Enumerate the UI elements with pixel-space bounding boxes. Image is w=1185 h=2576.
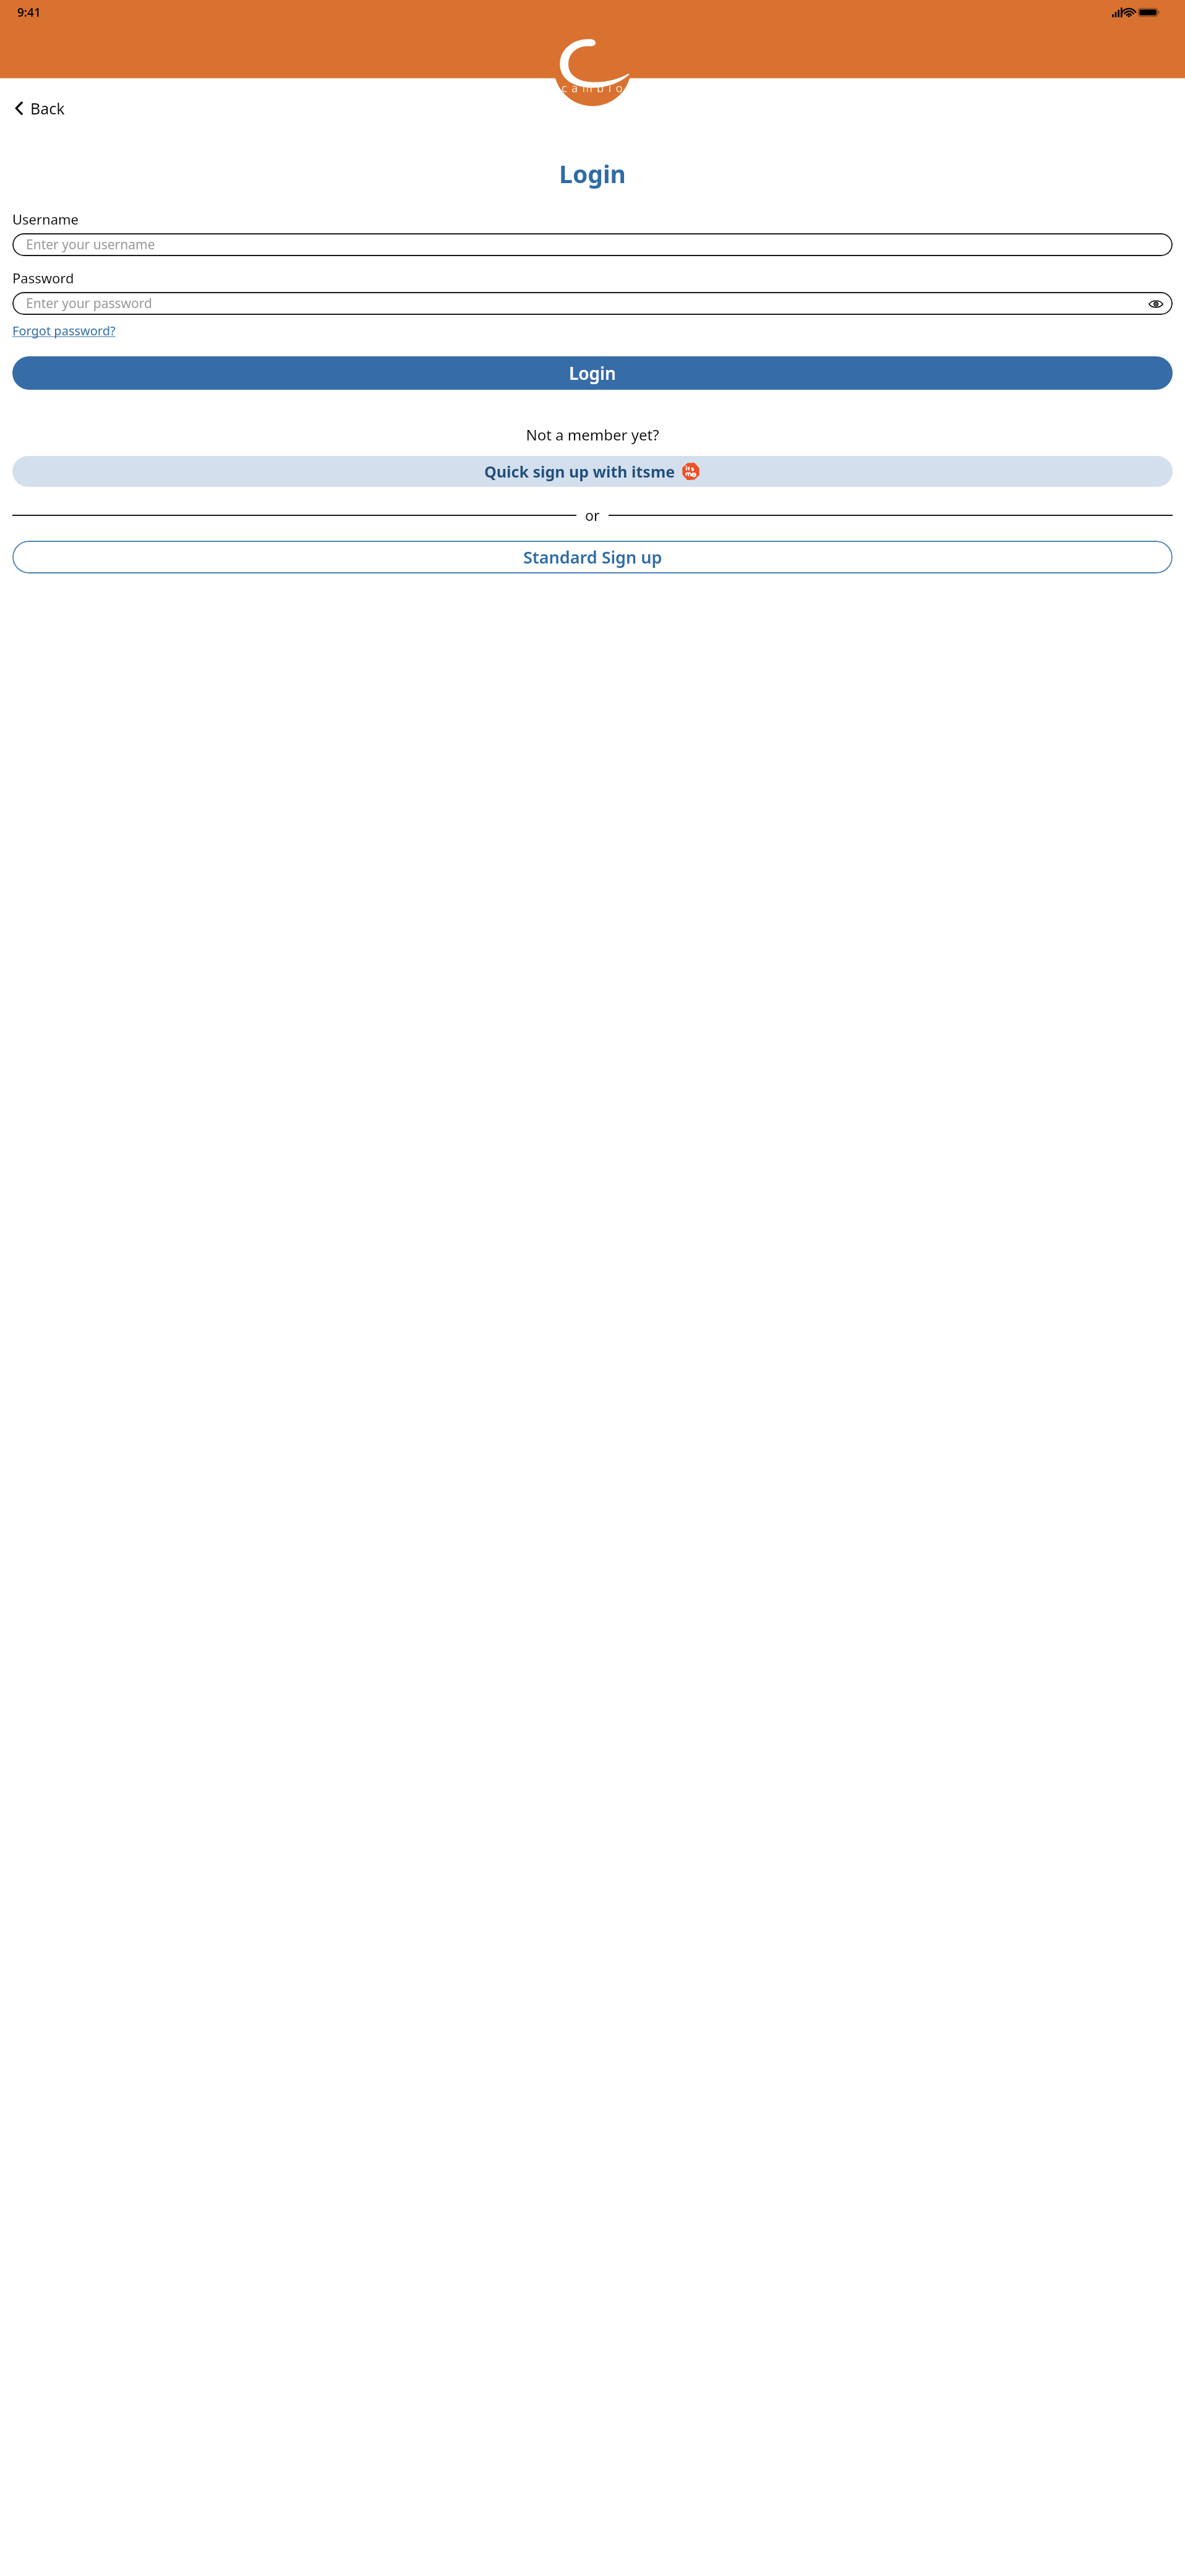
staticText: or <box>585 505 600 525</box>
staticText: c a m b i o <box>562 80 623 96</box>
staticText: Enter your username <box>26 236 155 254</box>
button[interactable]: Enter your username <box>12 233 1173 256</box>
button[interactable]: Forgot password? <box>12 322 116 339</box>
button[interactable]: Enter your password <box>12 292 1173 315</box>
staticText: Login <box>0 157 1185 190</box>
button[interactable]: Quick sign up with itsme <box>12 456 1173 487</box>
staticText: Enter your password <box>26 294 152 312</box>
staticText: Standard Sign up <box>523 546 662 569</box>
button[interactable]: Back <box>0 94 77 122</box>
staticText: Username <box>12 210 79 228</box>
staticText: Password <box>12 268 74 287</box>
button[interactable]: Show password <box>1145 293 1166 314</box>
button[interactable]: Login <box>12 356 1173 390</box>
staticText: Back <box>30 98 65 119</box>
button[interactable]: Standard Sign up <box>12 541 1173 573</box>
staticText: Login <box>569 361 616 385</box>
staticText: 9:41 <box>17 4 41 20</box>
staticText: Not a member yet? <box>12 424 1173 445</box>
staticText: Quick sign up with itsme <box>484 461 675 482</box>
staticText: Forgot password? <box>12 322 116 339</box>
